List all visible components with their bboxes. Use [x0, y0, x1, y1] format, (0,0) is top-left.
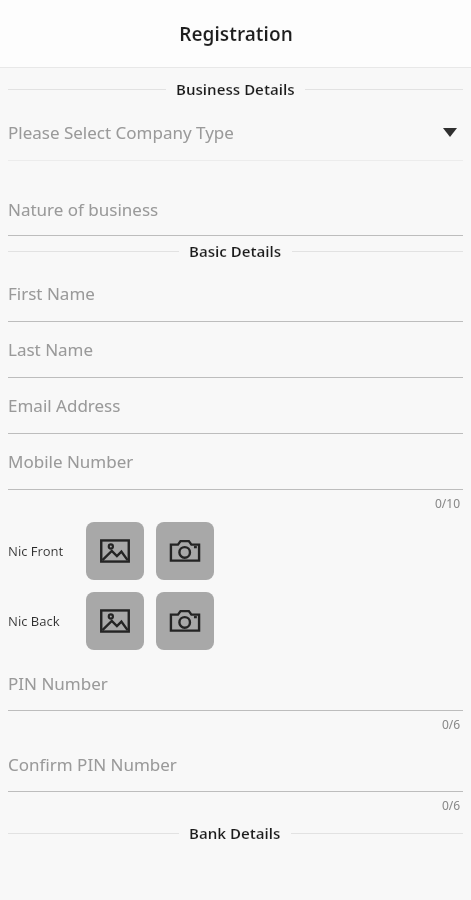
button[interactable]: Take photo with camera: [156, 522, 214, 580]
staticText: First Name: [8, 282, 463, 305]
button[interactable]: Pick image from gallery: [86, 522, 144, 580]
staticText: Nic Back: [8, 612, 86, 630]
button[interactable]: Email Address: [0, 378, 471, 434]
button[interactable]: PIN Number: [0, 656, 471, 711]
staticText: Business Details: [176, 79, 295, 99]
staticText: Bank Details: [189, 823, 281, 843]
staticText: Mobile Number: [8, 450, 463, 473]
staticText: Confirm PIN Number: [8, 753, 463, 776]
staticText: 0/6: [442, 716, 461, 732]
staticText: Email Address: [8, 394, 463, 417]
staticText: 0/10: [435, 495, 461, 511]
button[interactable]: Confirm PIN Number: [0, 737, 471, 792]
staticText: Registration: [179, 21, 293, 47]
staticText: Nic Front: [8, 542, 86, 560]
button[interactable]: Pick image from gallery: [86, 592, 144, 650]
button[interactable]: Mobile Number: [0, 434, 471, 490]
staticText: Basic Details: [189, 241, 282, 261]
staticText: Please Select Company Type: [8, 121, 443, 144]
button[interactable]: Nature of business: [0, 183, 471, 236]
button[interactable]: Please Select Company Type: [0, 104, 471, 161]
staticText: 0/6: [442, 797, 461, 813]
staticText: Last Name: [8, 338, 463, 361]
button[interactable]: Last Name: [0, 322, 471, 378]
staticText: Nature of business: [8, 198, 463, 221]
staticText: PIN Number: [8, 672, 463, 695]
button[interactable]: First Name: [0, 266, 471, 322]
button[interactable]: Take photo with camera: [156, 592, 214, 650]
